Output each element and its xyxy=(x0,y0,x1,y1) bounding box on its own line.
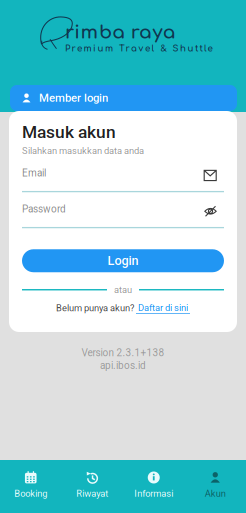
staticText: Daftar di sini xyxy=(138,302,188,313)
staticText: Premium Travel & Shuttle xyxy=(65,44,212,53)
staticText: Version 2.3.1+138 xyxy=(81,347,164,359)
staticText: api.ibos.id xyxy=(100,360,146,371)
staticText: Password xyxy=(22,203,66,215)
button[interactable]: Login xyxy=(22,249,224,272)
staticText: Booking xyxy=(14,488,47,499)
staticText: Belum punya akun? xyxy=(56,303,136,313)
button[interactable]: Booking xyxy=(0,460,61,513)
staticText: Login xyxy=(107,253,138,268)
button[interactable]: Riwayat xyxy=(61,460,123,513)
staticText: atau xyxy=(114,284,132,295)
staticText: Member login xyxy=(39,91,108,105)
button[interactable]: Daftar di sini xyxy=(136,302,190,314)
button[interactable]: Akun xyxy=(184,460,246,513)
staticText: Informasi xyxy=(134,488,173,499)
staticText: Email xyxy=(22,167,46,179)
staticText: Riwayat xyxy=(76,488,108,499)
staticText: Akun xyxy=(205,488,226,499)
button[interactable]: Informasi xyxy=(123,460,184,513)
staticText: Masuk akun xyxy=(22,122,116,142)
staticText: rimba raya xyxy=(65,22,176,43)
staticText: Silahkan masukkan data anda xyxy=(22,145,144,156)
